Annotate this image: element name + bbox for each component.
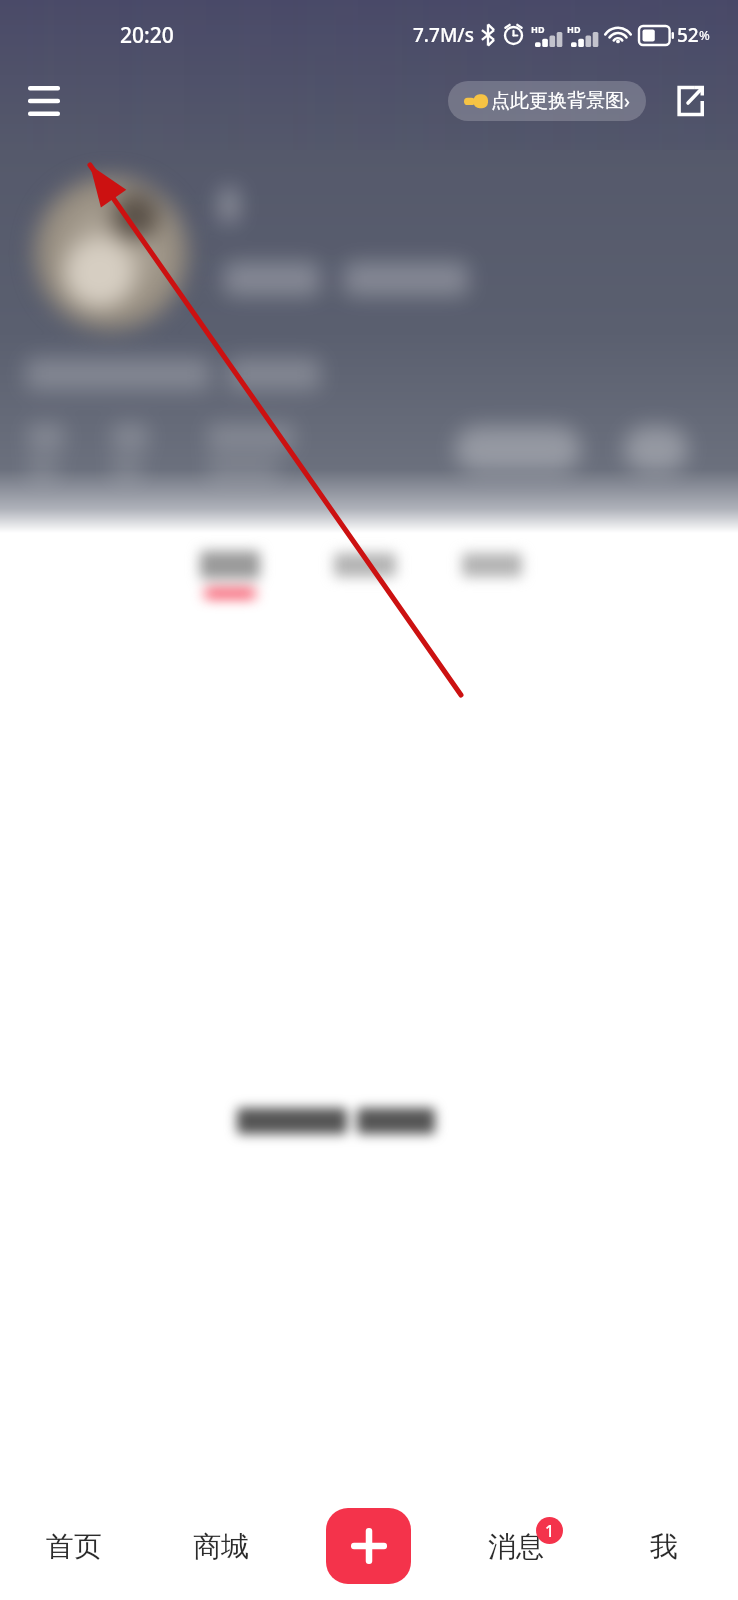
button[interactable]: 消息: [474, 1519, 558, 1574]
staticText: %: [699, 26, 710, 44]
staticText: ›: [624, 88, 630, 114]
button[interactable]: Menu: [18, 75, 70, 127]
button[interactable]: Create post: [326, 1508, 411, 1584]
staticText: 1: [545, 1520, 555, 1542]
staticText: 20:20: [120, 21, 174, 50]
button[interactable]: 商城: [175, 1519, 267, 1574]
button[interactable]: 点此更换背景图: [448, 81, 646, 121]
button[interactable]: 首页: [28, 1519, 120, 1574]
button[interactable]: Share: [664, 75, 716, 127]
staticText: 7.7M/s: [413, 22, 474, 48]
staticText: HD: [567, 23, 581, 35]
staticText: 点此更换背景图: [491, 89, 624, 113]
staticText: 消息: [488, 1529, 544, 1564]
staticText: 52: [677, 22, 699, 48]
staticText: 首页: [46, 1529, 102, 1564]
staticText: 我: [650, 1529, 678, 1564]
staticText: HD: [531, 23, 545, 35]
button[interactable]: 我: [632, 1519, 696, 1574]
staticText: 商城: [193, 1529, 249, 1564]
